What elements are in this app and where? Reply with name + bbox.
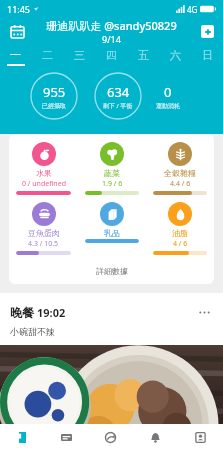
button[interactable]: 全穀雜糧: [146, 142, 214, 195]
button[interactable]: Add: [197, 21, 217, 41]
button[interactable]: Notifications: [133, 424, 178, 450]
staticText: 4.3 / 10.5: [28, 239, 59, 249]
staticText: 已經攝取: [42, 102, 66, 110]
button[interactable]: 水果: [9, 142, 78, 195]
button[interactable]: 日: [191, 44, 223, 66]
button[interactable]: 三: [63, 44, 95, 66]
staticText: 豆魚蛋肉: [28, 228, 60, 238]
staticText: 4G: [187, 4, 198, 15]
staticText: 三: [74, 48, 85, 62]
staticText: 四: [106, 48, 117, 62]
staticText: 全穀雜糧: [164, 168, 196, 178]
staticText: 4 / 6: [173, 239, 188, 249]
button[interactable]: Profile: [178, 424, 223, 450]
staticText: 634: [107, 83, 130, 101]
staticText: 4.4 / 6: [170, 179, 191, 189]
staticText: 蔬菜: [104, 168, 120, 178]
staticText: 詳細數據: [96, 266, 128, 276]
button[interactable]: Calendar: [6, 20, 28, 42]
button[interactable]: Feed: [44, 424, 88, 450]
staticText: 0: [164, 83, 172, 101]
staticText: 五: [138, 48, 149, 62]
staticText: 珊迪趴趴走 @sandy50829: [46, 18, 177, 33]
button[interactable]: 詳細數據: [9, 260, 214, 282]
button[interactable]: 蔬菜: [78, 142, 146, 195]
staticText: 水果: [36, 168, 52, 178]
staticText: 1.9 / 6: [102, 179, 123, 189]
button[interactable]: 四: [95, 44, 127, 66]
staticText: 955: [43, 83, 66, 101]
staticText: 日: [202, 48, 213, 62]
staticText: 二: [42, 48, 53, 62]
button[interactable]: 油脂: [146, 202, 214, 255]
staticText: 9/14: [102, 33, 121, 44]
button[interactable]: More options: [193, 301, 215, 323]
staticText: 一: [10, 48, 21, 62]
staticText: 晚餐: [10, 305, 34, 320]
button[interactable]: 634: [94, 72, 142, 120]
button[interactable]: Diary: [0, 424, 44, 450]
button[interactable]: 乳品: [78, 202, 146, 243]
staticText: 0 / undefined: [22, 179, 66, 189]
staticText: 剩下 / 平衡: [103, 102, 133, 110]
button[interactable]: 六: [159, 44, 191, 66]
staticText: 六: [170, 48, 181, 62]
staticText: 11:45: [7, 3, 31, 15]
staticText: 19:02: [37, 305, 66, 320]
button[interactable]: 955: [30, 72, 78, 120]
button[interactable]: 豆魚蛋肉: [9, 202, 78, 255]
staticText: 油脂: [172, 228, 188, 238]
button[interactable]: 五: [127, 44, 159, 66]
button[interactable]: Camera: [88, 424, 133, 450]
staticText: 乳品: [104, 228, 120, 238]
staticText: 運動消耗: [156, 102, 180, 110]
button[interactable]: 二: [31, 44, 63, 66]
button[interactable]: 一: [0, 44, 31, 66]
staticText: 小碗甜不辣: [10, 326, 55, 337]
